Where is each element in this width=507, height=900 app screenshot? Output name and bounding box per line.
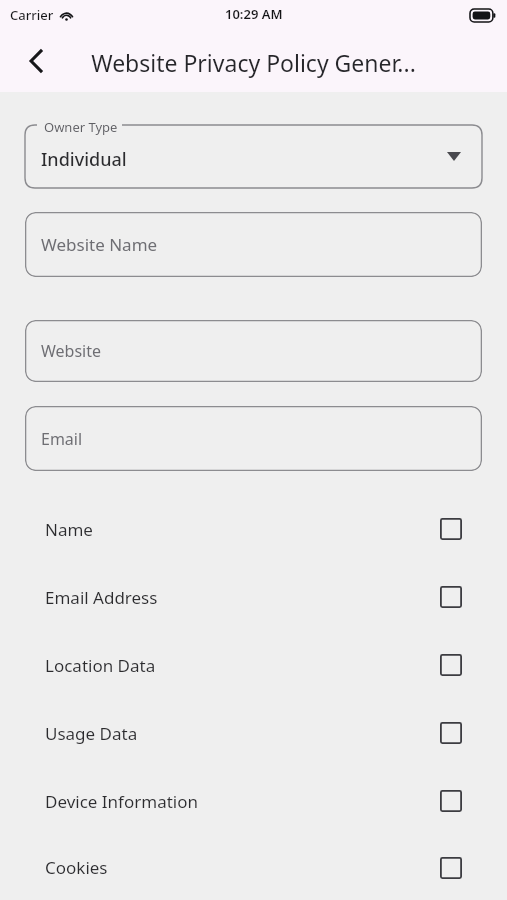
staticText: Website bbox=[41, 340, 102, 362]
staticText: Email Address bbox=[45, 586, 440, 609]
button[interactable]: Email bbox=[25, 406, 482, 471]
button[interactable]: Cookies bbox=[0, 835, 507, 900]
staticText: Carrier bbox=[10, 6, 54, 24]
button[interactable]: Back bbox=[14, 38, 60, 84]
button[interactable]: Name bbox=[0, 495, 507, 563]
button[interactable]: Owner Type bbox=[25, 125, 482, 188]
staticText: Website Privacy Policy Gener... bbox=[91, 47, 416, 78]
staticText: Cookies bbox=[45, 856, 440, 879]
button[interactable]: Email Address bbox=[0, 563, 507, 631]
staticText: Owner Type bbox=[44, 118, 118, 136]
staticText: Website Name bbox=[41, 233, 158, 256]
staticText: Device Information bbox=[45, 790, 440, 813]
staticText: 10:29 AM bbox=[225, 5, 283, 23]
button[interactable]: Location Data bbox=[0, 631, 507, 699]
button[interactable]: Usage Data bbox=[0, 699, 507, 767]
button[interactable]: Device Information bbox=[0, 767, 507, 835]
staticText: Location Data bbox=[45, 654, 440, 677]
staticText: Email bbox=[41, 428, 83, 450]
staticText: Usage Data bbox=[45, 722, 440, 745]
button[interactable]: Website Name bbox=[25, 212, 482, 277]
button[interactable]: Website bbox=[25, 320, 482, 382]
staticText: Individual bbox=[41, 147, 127, 172]
staticText: Name bbox=[45, 518, 440, 541]
